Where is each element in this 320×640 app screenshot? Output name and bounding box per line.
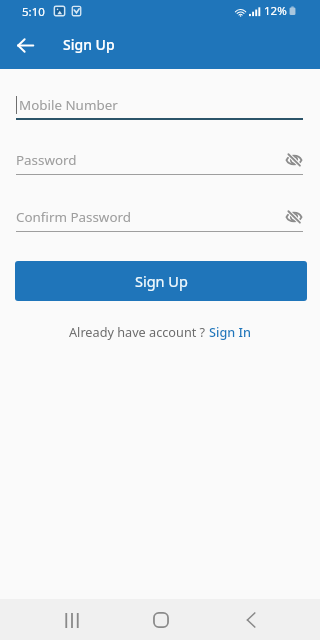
button[interactable]: Home [143,602,179,638]
button[interactable]: Sign In [209,323,251,340]
button[interactable]: Sign Up [15,261,307,301]
button[interactable]: Toggle password visibility [283,148,305,170]
staticText: Already have account ? [69,323,209,340]
button[interactable]: Password [16,148,303,174]
staticText: Sign In [209,323,251,340]
button[interactable]: Mobile Number [16,93,303,119]
staticText: Confirm Password [16,208,131,226]
staticText: 12% [264,3,287,19]
staticText: Sign Up [63,35,115,54]
button[interactable]: Back [7,27,44,64]
staticText: Mobile Number [19,96,118,114]
staticText: 5:10 [22,4,45,20]
staticText: Sign Up [135,271,188,291]
button[interactable]: Confirm Password [16,205,303,231]
button[interactable]: Toggle password visibility [283,205,305,227]
staticText: Password [16,151,77,169]
button[interactable]: Back [233,602,269,638]
button[interactable]: Recent apps [54,602,90,638]
